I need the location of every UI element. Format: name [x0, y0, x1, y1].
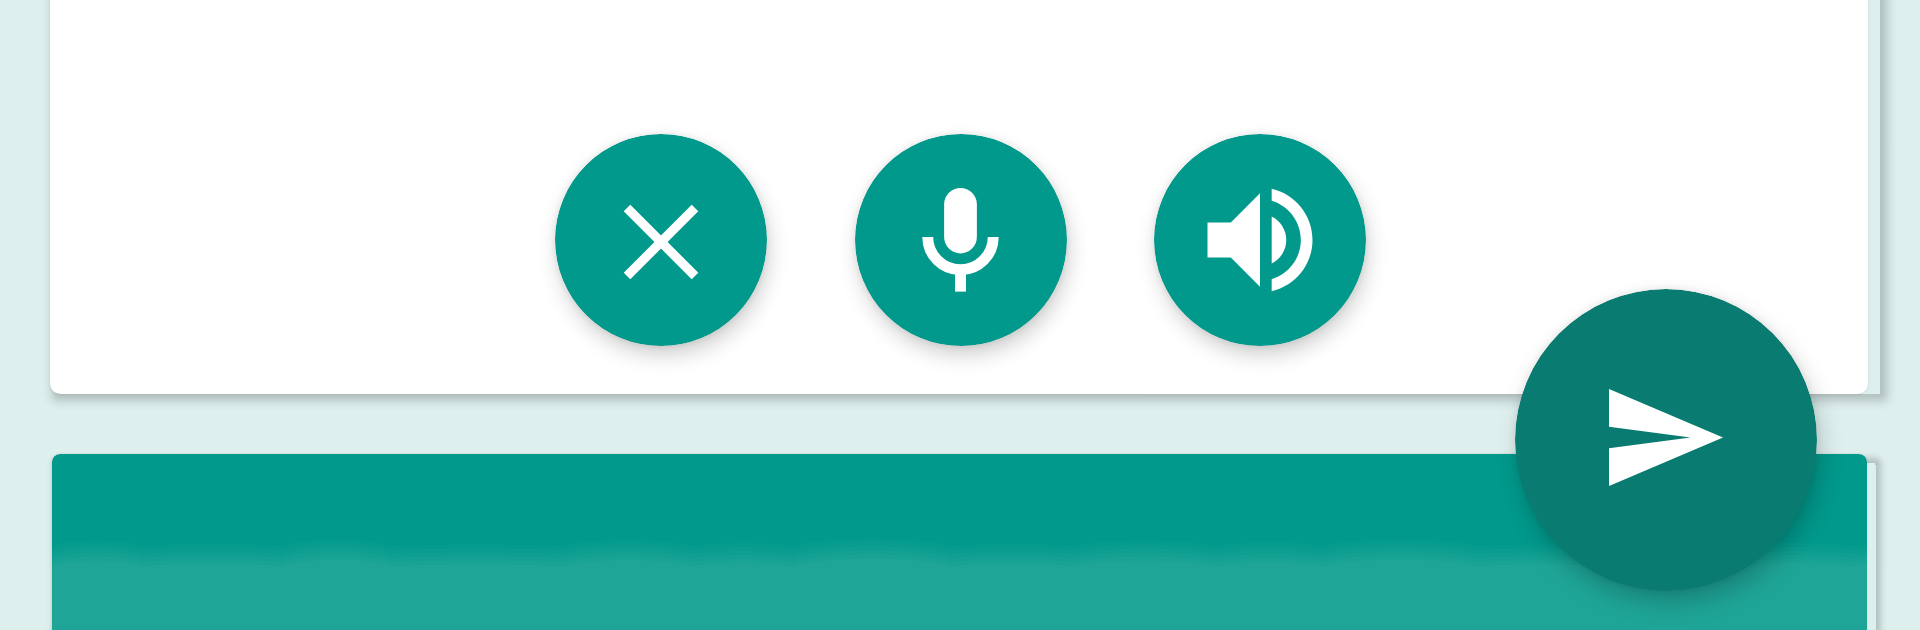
button[interactable] — [52, 454, 1867, 630]
button[interactable]: Send — [1515, 289, 1817, 591]
button[interactable]: Volume — [1154, 134, 1366, 346]
button[interactable]: Microphone — [855, 134, 1067, 346]
button[interactable]: Close — [555, 134, 767, 346]
